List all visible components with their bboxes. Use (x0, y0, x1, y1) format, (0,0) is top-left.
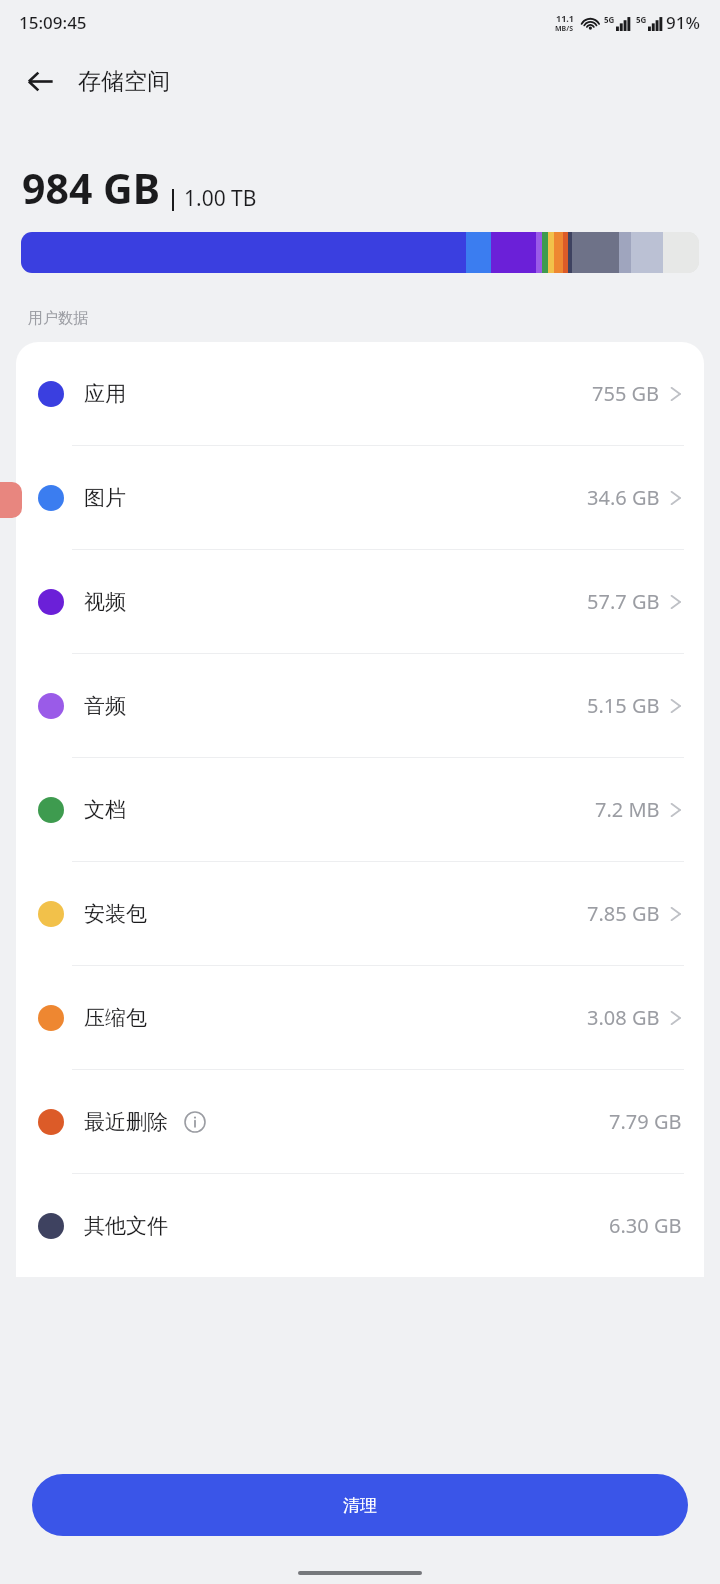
staticText: 3.08 GB (587, 1004, 660, 1031)
staticText: 用户数据 (28, 309, 88, 328)
button[interactable]: 压缩包 (16, 966, 704, 1069)
staticText: 15:09:45 (19, 11, 87, 34)
button[interactable]: 图片 (16, 446, 704, 549)
staticText: 最近删除 (84, 1109, 168, 1135)
staticText: 755 GB (592, 380, 660, 407)
button[interactable]: 视频 (16, 550, 704, 653)
button[interactable]: 其他文件 (16, 1174, 704, 1277)
button[interactable]: 音频 (16, 654, 704, 757)
staticText: 视频 (84, 589, 126, 615)
button[interactable]: 最近删除 (16, 1070, 704, 1173)
button[interactable]: Floating app (0, 482, 22, 518)
button[interactable]: 清理 (32, 1474, 688, 1536)
staticText: 984 GB (22, 160, 160, 216)
staticText: 存储空间 (78, 67, 170, 96)
staticText: 7.79 GB (609, 1108, 682, 1135)
button[interactable]: 文档 (16, 758, 704, 861)
staticText: 5.15 GB (587, 692, 660, 719)
staticText: 应用 (84, 381, 126, 407)
staticText: 5G (636, 14, 647, 25)
staticText: 7.85 GB (587, 900, 660, 927)
staticText: 57.7 GB (587, 588, 660, 615)
staticText: 安装包 (84, 901, 147, 927)
staticText: 5G (604, 14, 615, 25)
staticText: 压缩包 (84, 1005, 147, 1031)
staticText: 清理 (343, 1495, 377, 1516)
staticText: 34.6 GB (587, 484, 660, 511)
button[interactable]: Info (182, 1109, 208, 1135)
staticText: 音频 (84, 693, 126, 719)
staticText: 6.30 GB (609, 1212, 682, 1239)
staticText: 文档 (84, 797, 126, 823)
staticText: 11.1 (556, 12, 574, 24)
button[interactable]: Back (14, 55, 66, 107)
staticText: 7.2 MB (595, 796, 660, 823)
staticText: 其他文件 (84, 1213, 168, 1239)
button[interactable]: 安装包 (16, 862, 704, 965)
staticText: MB/S (555, 24, 574, 34)
button[interactable]: 应用 (16, 342, 704, 445)
staticText: 91% (666, 11, 700, 34)
staticText: 1.00 TB (184, 184, 257, 213)
staticText: 图片 (84, 485, 126, 511)
